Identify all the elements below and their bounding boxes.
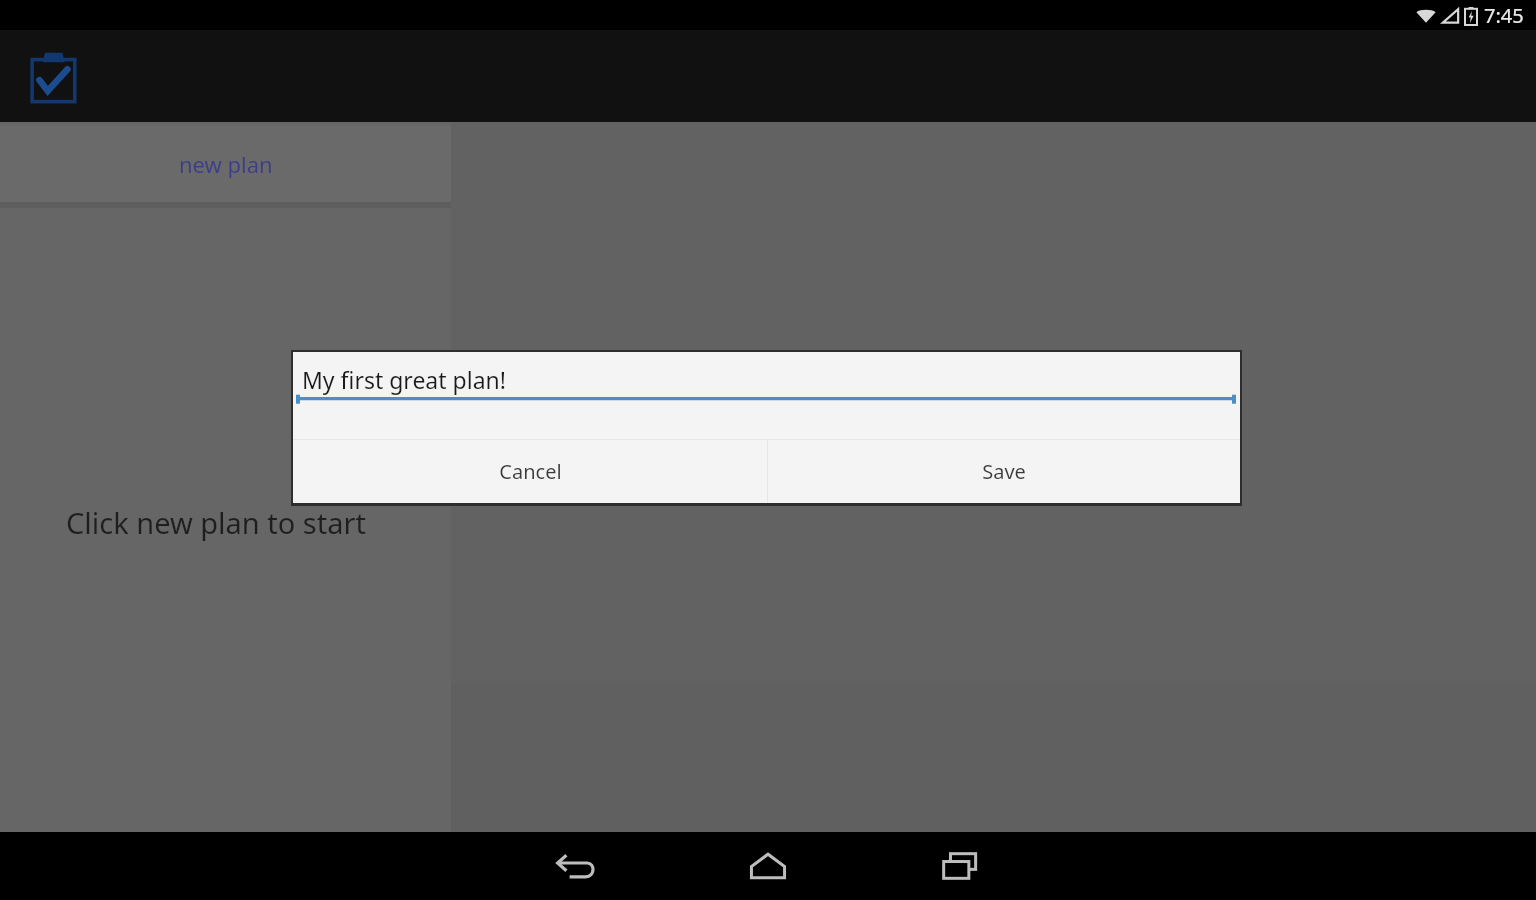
staticText: new plan [179, 149, 273, 179]
button[interactable]: Back [540, 838, 612, 894]
button[interactable]: Save [768, 440, 1240, 503]
staticText: My first great plan! [302, 364, 506, 395]
button[interactable]: My first great plan! [293, 352, 1240, 402]
button[interactable]: Home [732, 838, 804, 894]
button[interactable]: App icon [26, 50, 84, 108]
button[interactable]: Recent apps [924, 838, 996, 894]
button[interactable]: Cancel [293, 440, 767, 503]
staticText: 7:45 [1484, 2, 1524, 29]
staticText: Save [982, 458, 1026, 485]
button[interactable]: new plan [0, 126, 451, 202]
staticText: Click new plan to start [66, 503, 366, 542]
staticText: Cancel [499, 458, 562, 485]
